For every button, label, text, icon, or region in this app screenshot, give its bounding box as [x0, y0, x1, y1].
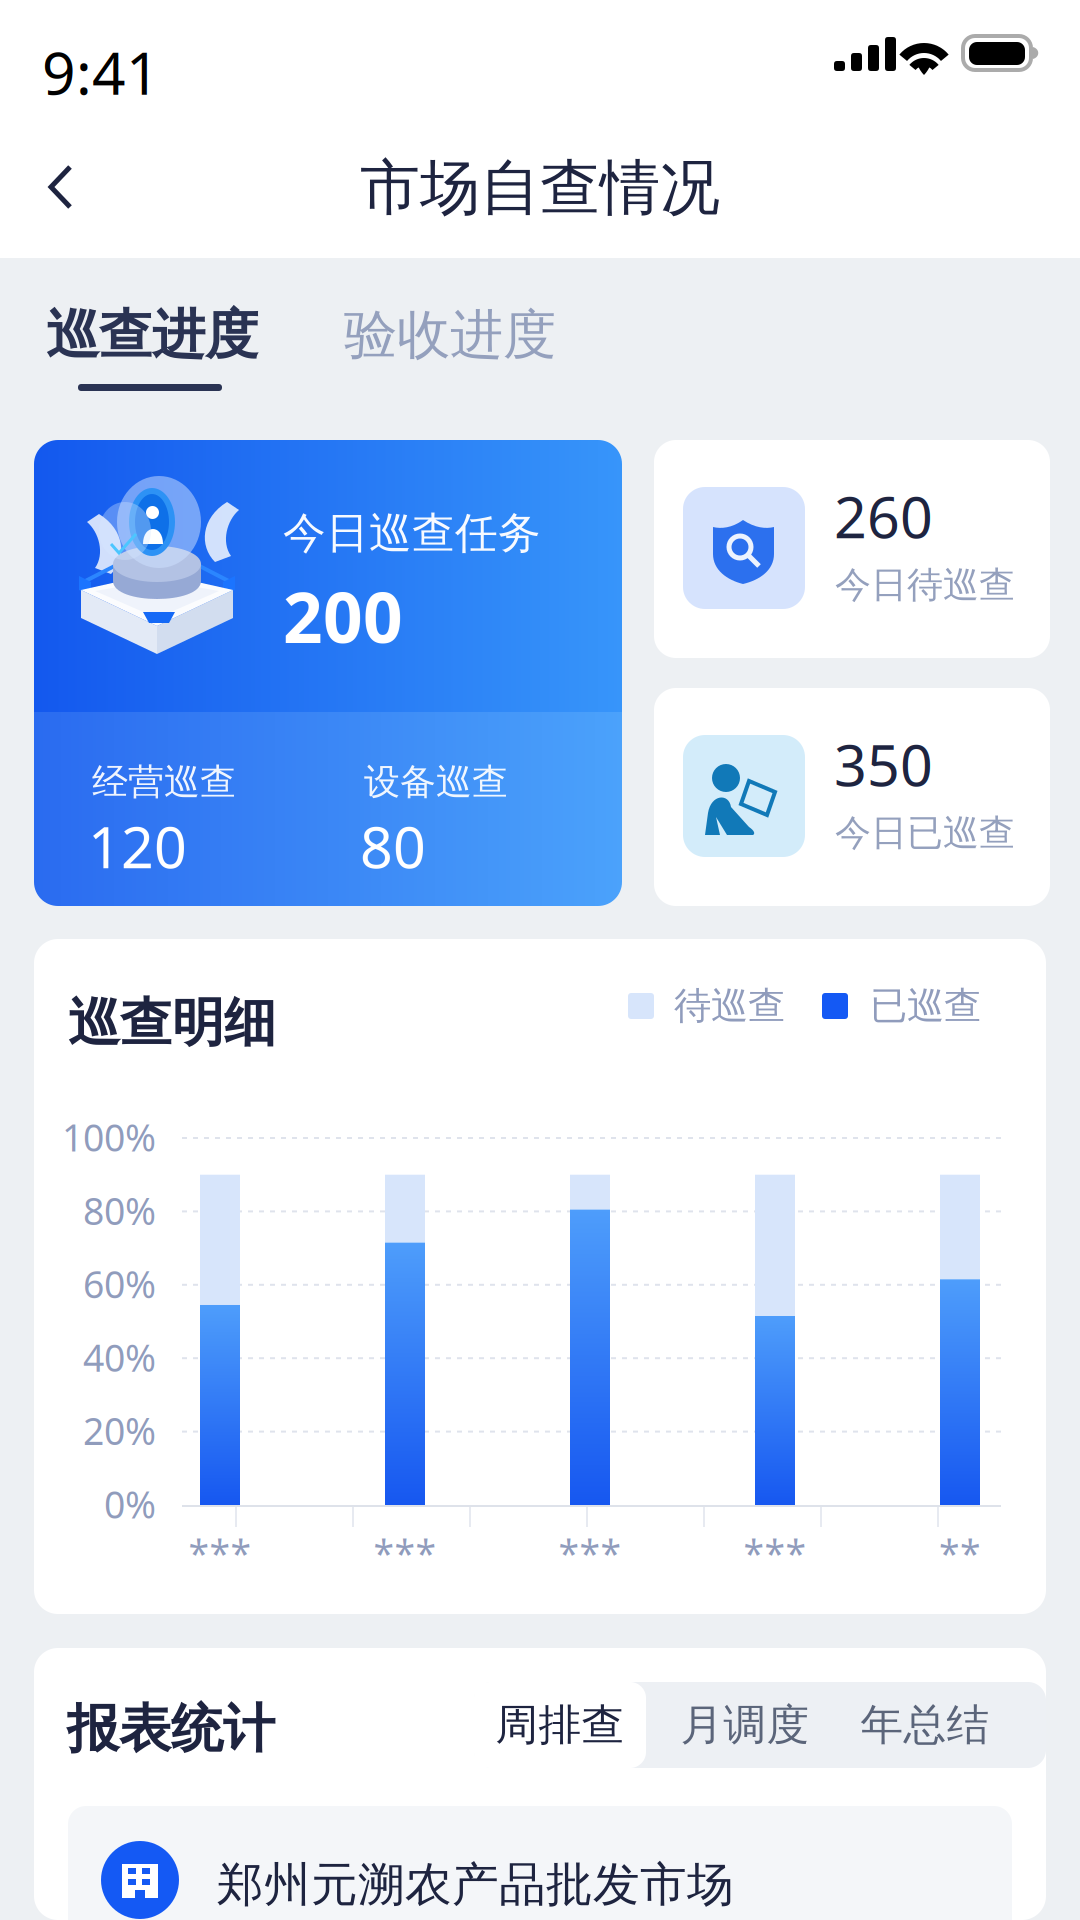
staticText: 80	[360, 808, 426, 884]
staticText: ***	[373, 1528, 436, 1578]
staticText: 60%	[83, 1259, 156, 1309]
staticText: 周排查	[495, 1699, 624, 1751]
staticText: ***	[188, 1528, 251, 1578]
staticText: 今日巡查任务	[283, 507, 541, 559]
staticText: 100%	[62, 1112, 156, 1162]
staticText: 待巡查	[674, 983, 785, 1029]
staticText: 验收进度	[344, 302, 556, 368]
staticText: 经营巡查	[92, 760, 236, 804]
button[interactable]: 350	[654, 688, 1050, 906]
button[interactable]: 月调度	[655, 1682, 835, 1768]
button[interactable]: Back	[0, 129, 122, 247]
staticText: 巡查进度	[46, 302, 258, 368]
staticText: **	[939, 1528, 981, 1578]
staticText: 月调度	[680, 1699, 809, 1751]
button[interactable]: 巡查进度	[46, 302, 258, 432]
staticText: ***	[743, 1528, 806, 1578]
staticText: 20%	[83, 1406, 156, 1455]
staticText: 已巡查	[870, 983, 981, 1029]
staticText: 200	[283, 570, 403, 662]
button[interactable]: 年总结	[835, 1682, 1015, 1768]
staticText: 40%	[83, 1332, 156, 1382]
staticText: 350	[834, 726, 933, 802]
staticText: 报表统计	[67, 1697, 275, 1761]
staticText: 9:41	[42, 33, 160, 111]
staticText: 120	[88, 808, 187, 884]
staticText: ***	[558, 1528, 621, 1578]
staticText: 260	[834, 478, 933, 554]
staticText: 设备巡查	[364, 760, 508, 804]
staticText: 今日已巡查	[835, 811, 1015, 855]
staticText: 年总结	[860, 1699, 989, 1751]
button[interactable]: 今日巡查任务	[34, 440, 622, 906]
button[interactable]: 260	[654, 440, 1050, 658]
staticText: 0%	[104, 1479, 156, 1529]
staticText: 80%	[83, 1186, 156, 1235]
button[interactable]: 周排查	[474, 1682, 646, 1768]
staticText: 今日待巡查	[835, 563, 1015, 607]
staticText: 巡查明细	[68, 991, 276, 1055]
staticText: 市场自查情况	[360, 151, 720, 225]
button[interactable]: 验收进度	[344, 302, 574, 368]
staticText: 郑州元溯农产品批发市场	[217, 1856, 734, 1913]
